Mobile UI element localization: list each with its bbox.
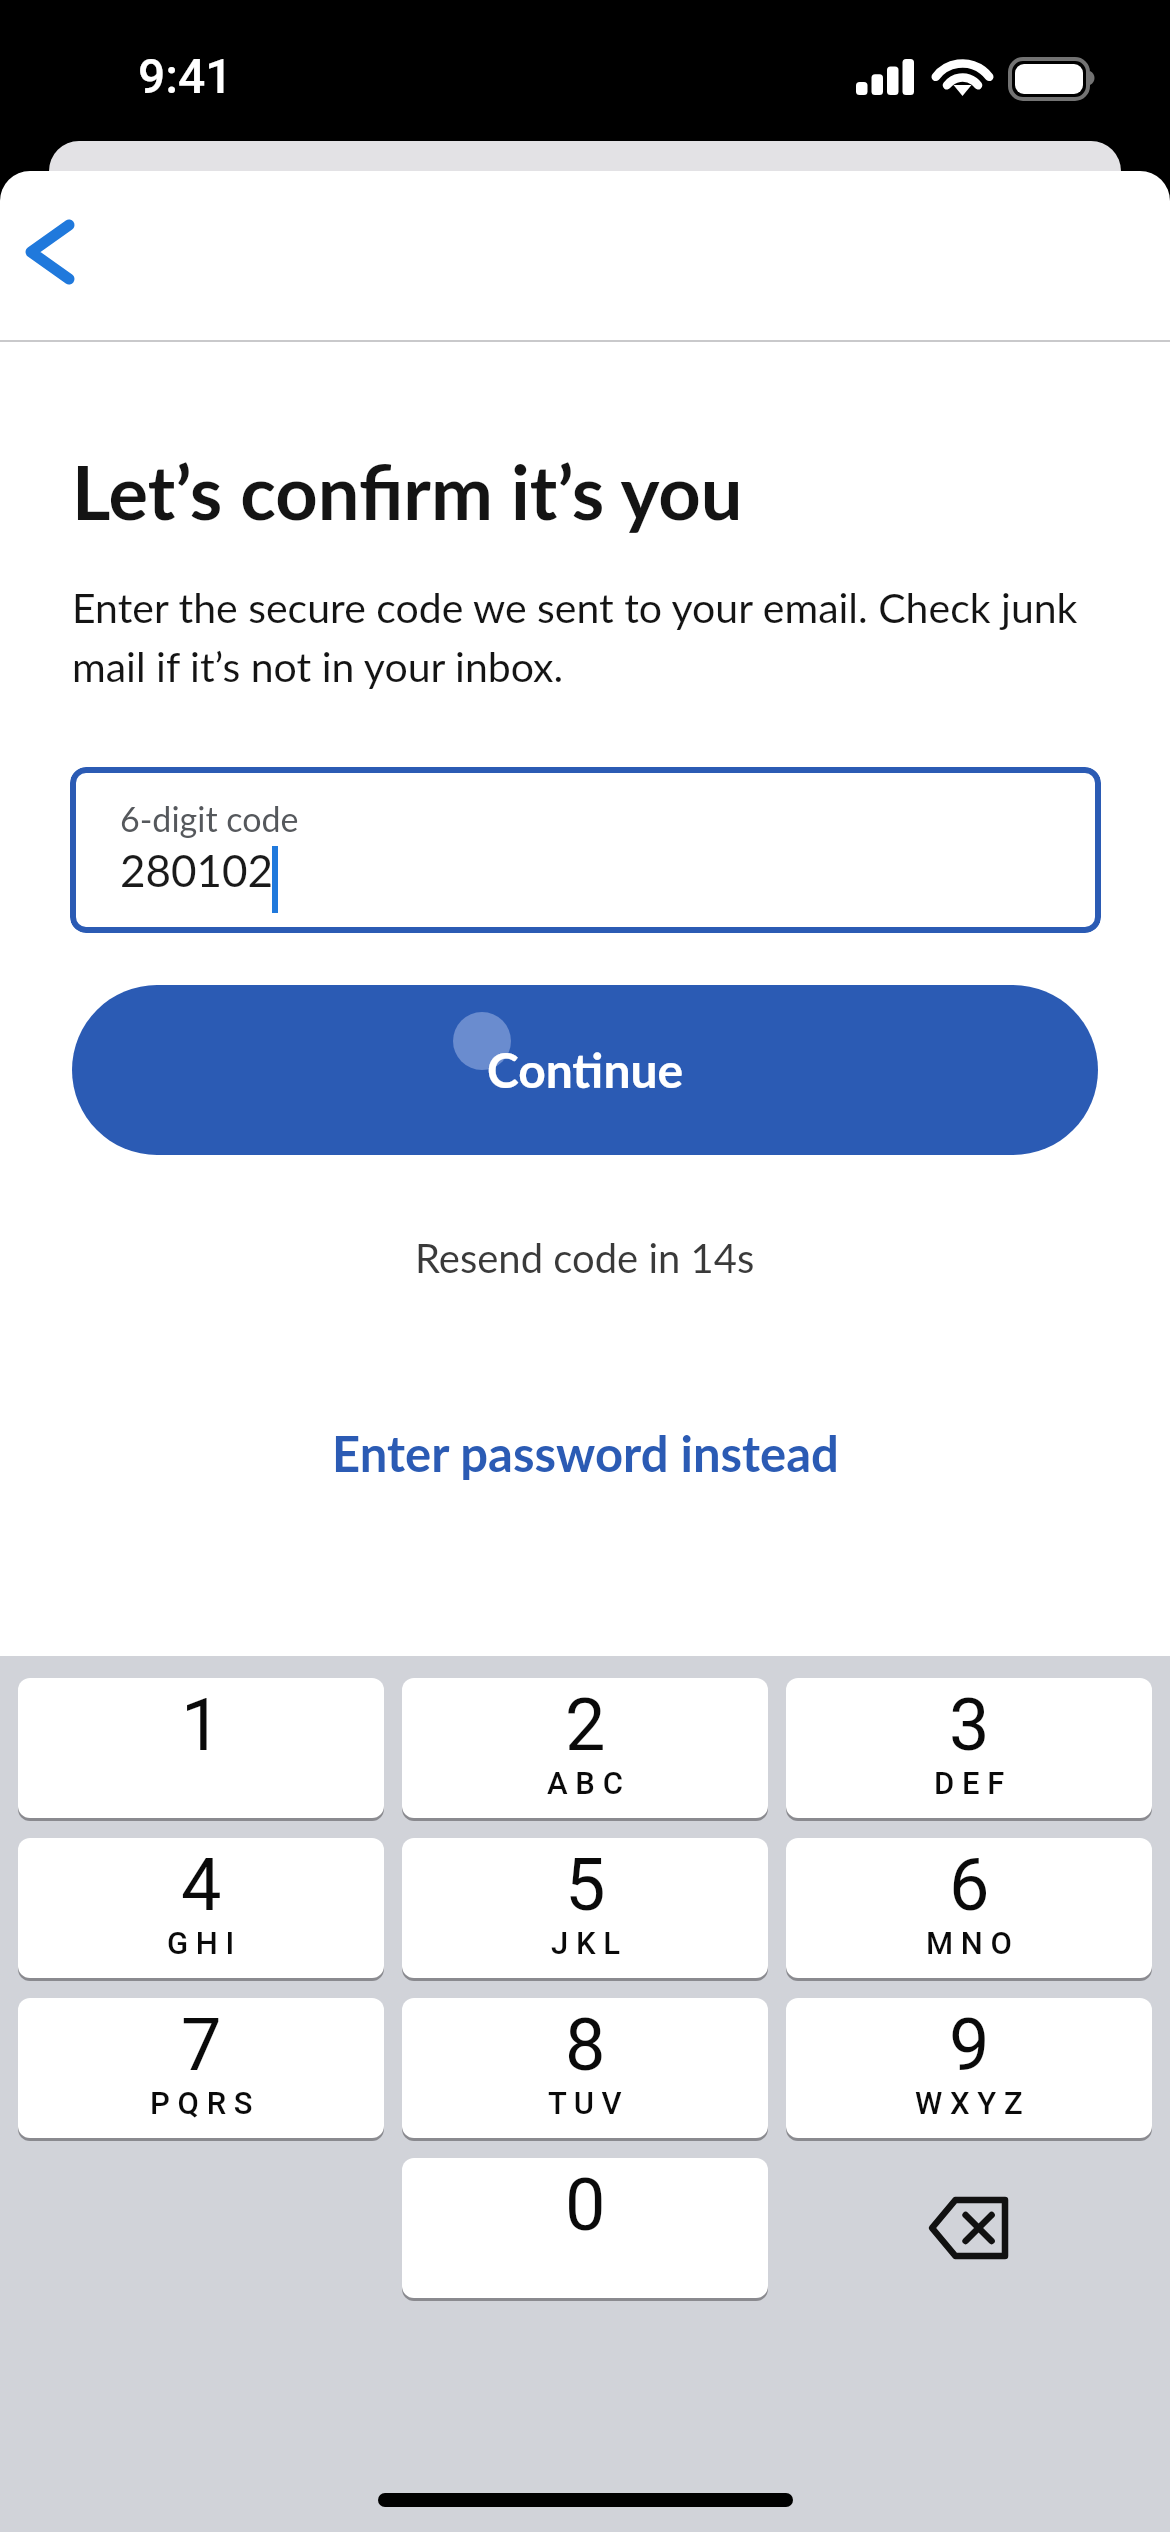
staticText: G H I [167, 1925, 235, 1961]
button[interactable]: Enter password instead [308, 1408, 863, 1499]
staticText: M N O [926, 1925, 1013, 1961]
staticText: 0 [565, 2163, 606, 2247]
staticText: 9 [949, 2003, 990, 2087]
staticText: 4 [181, 1843, 222, 1927]
staticText: 8 [565, 2003, 606, 2087]
button[interactable]: Continue [72, 985, 1098, 1155]
staticText: 6 [949, 1843, 990, 1927]
button[interactable]: 0 [402, 2158, 768, 2298]
staticText: 1 [181, 1683, 222, 1767]
staticText: Resend code in 14s [415, 1234, 755, 1282]
button[interactable]: 6-digit code [70, 767, 1101, 933]
button[interactable]: 2 [402, 1678, 768, 1818]
staticText: 3 [949, 1683, 990, 1767]
staticText: 2 [565, 1683, 606, 1767]
staticText: A B C [547, 1765, 623, 1801]
button[interactable]: 4 [18, 1838, 384, 1978]
button[interactable]: Backspace [786, 2158, 1152, 2298]
staticText: Let’s confirm it’s you [72, 447, 743, 536]
staticText: Continue [487, 1041, 684, 1099]
staticText: 6-digit code [120, 798, 299, 839]
staticText: J K L [551, 1925, 620, 1961]
button[interactable]: 7 [18, 1998, 384, 2138]
button[interactable]: 6 [786, 1838, 1152, 1978]
staticText: Enter the secure code we sent to your em… [72, 583, 1084, 690]
staticText: W X Y Z [915, 2085, 1023, 2121]
button[interactable]: 1 [18, 1678, 384, 1818]
staticText: 280102 [120, 844, 274, 897]
staticText: 7 [181, 2003, 222, 2087]
button[interactable]: Back [0, 197, 100, 307]
staticText: T U V [548, 2085, 622, 2121]
button[interactable]: 3 [786, 1678, 1152, 1818]
staticText: D E F [934, 1765, 1005, 1801]
button[interactable]: 9 [786, 1998, 1152, 2138]
staticText: 9:41 [138, 48, 233, 104]
button[interactable]: 8 [402, 1998, 768, 2138]
staticText: Enter password instead [332, 1424, 839, 1483]
staticText: 5 [565, 1843, 606, 1927]
staticText: P Q R S [150, 2085, 253, 2121]
button[interactable]: 5 [402, 1838, 768, 1978]
